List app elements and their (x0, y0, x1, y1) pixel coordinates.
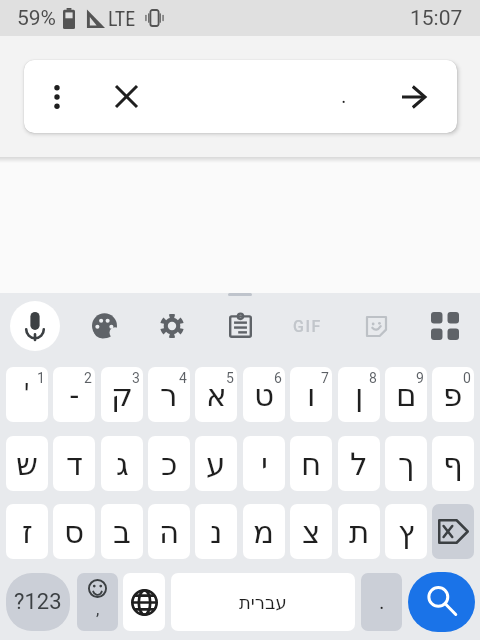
staticText: פ (443, 377, 463, 413)
button[interactable]: Close (96, 60, 156, 133)
button[interactable]: Go (386, 60, 442, 133)
button[interactable]: Change language (123, 573, 165, 631)
button[interactable]: ף (432, 436, 474, 491)
staticText: ת (349, 514, 370, 550)
staticText: 8 (369, 370, 377, 386)
button[interactable]: Search (408, 572, 475, 632)
button[interactable]: More (423, 304, 467, 348)
staticText: 5 (226, 370, 234, 386)
staticText: , (96, 599, 100, 619)
staticText: ב (113, 514, 131, 550)
button[interactable]: ל (338, 436, 380, 491)
button[interactable]: GIF (284, 304, 332, 348)
button[interactable]: Clipboard (218, 304, 262, 348)
button[interactable]: א (195, 367, 237, 422)
staticText: GIF (293, 317, 323, 336)
button[interactable]: ש (6, 436, 48, 491)
staticText: - (70, 377, 79, 413)
staticText: ק (111, 377, 133, 413)
staticText: ש (16, 446, 38, 482)
button[interactable]: - (53, 367, 95, 422)
staticText: עברית (239, 592, 287, 613)
staticText: ף (443, 446, 463, 482)
button[interactable]: ט (243, 367, 285, 422)
staticText: 4 (179, 370, 187, 386)
staticText: ח (301, 446, 322, 482)
button[interactable]: ה (148, 504, 190, 559)
button[interactable]: כ (148, 436, 190, 491)
staticText: כ (161, 446, 178, 482)
staticText: ד (66, 446, 83, 482)
staticText: 3 (132, 370, 140, 386)
staticText: . (379, 590, 385, 615)
button[interactable]: ח (290, 436, 332, 491)
button[interactable]: מ (243, 504, 285, 559)
staticText: ל (350, 446, 368, 482)
staticText: ה (159, 514, 180, 550)
staticText: י (261, 446, 268, 482)
staticText: א (206, 377, 227, 413)
staticText: LTE (108, 7, 136, 30)
button[interactable]: ז (6, 504, 48, 559)
staticText: 6 (274, 370, 282, 386)
staticText: ג (116, 446, 129, 482)
button[interactable]: Voice input (10, 301, 60, 351)
staticText: ר (160, 377, 178, 413)
button[interactable]: ו (290, 367, 332, 422)
button[interactable]: ת (338, 504, 380, 559)
button[interactable]: Stickers (354, 304, 398, 348)
button[interactable]: פ (432, 367, 474, 422)
button[interactable]: Themes (82, 304, 126, 348)
button[interactable]: ם (385, 367, 427, 422)
staticText: ז (22, 514, 33, 550)
staticText: ט (254, 377, 275, 413)
staticText: ם (396, 377, 417, 413)
button[interactable]: ג (101, 436, 143, 491)
button[interactable]: More options (33, 60, 81, 133)
button[interactable]: צ (290, 504, 332, 559)
staticText: 0 (463, 370, 471, 386)
button[interactable]: ק (101, 367, 143, 422)
staticText: 2 (84, 370, 92, 386)
button[interactable]: ד (53, 436, 95, 491)
button[interactable]: ר (148, 367, 190, 422)
button[interactable]: Backspace (432, 504, 474, 559)
staticText: ע (206, 446, 226, 482)
button[interactable]: . (361, 573, 402, 631)
button[interactable]: נ (195, 504, 237, 559)
staticText: 1 (37, 370, 45, 386)
staticText: ך (398, 446, 415, 482)
staticText: 7 (321, 370, 329, 386)
staticText: 59% (17, 6, 56, 31)
button[interactable]: י (243, 436, 285, 491)
button[interactable]: עברית (171, 573, 355, 631)
button[interactable]: ע (195, 436, 237, 491)
button[interactable]: ן (338, 367, 380, 422)
button[interactable]: ?123 (6, 573, 70, 631)
staticText: ן (355, 377, 364, 413)
staticText: ץ (398, 514, 415, 550)
button[interactable]: ץ (385, 504, 427, 559)
button[interactable]: ב (101, 504, 143, 559)
staticText: נ (210, 514, 223, 550)
staticText: . (341, 84, 347, 109)
staticText: ' (24, 377, 30, 413)
button[interactable]: ך (385, 436, 427, 491)
button[interactable]: Emoji (77, 573, 118, 631)
staticText: מ (253, 514, 275, 550)
button[interactable]: ס (53, 504, 95, 559)
staticText: צ (302, 514, 321, 550)
staticText: ס (64, 514, 85, 550)
button[interactable]: Settings (150, 304, 194, 348)
staticText: 9 (416, 370, 424, 386)
staticText: 15:07 (410, 6, 463, 31)
button[interactable]: ' (6, 367, 48, 422)
staticText: ו (307, 377, 316, 413)
staticText: ?123 (14, 589, 62, 615)
